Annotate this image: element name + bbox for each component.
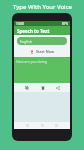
staticText: English	[20, 39, 32, 44]
button[interactable]: Share	[54, 84, 61, 91]
button[interactable]: English	[17, 37, 67, 45]
button[interactable]: How are you doing	[14, 57, 70, 83]
staticText: Type With Your Voice	[13, 3, 72, 11]
staticText: How are you doing	[16, 59, 47, 64]
staticText: 87%	[62, 22, 68, 26]
staticText: Speech to Text	[17, 28, 50, 34]
staticText: Start Now	[36, 49, 55, 54]
button[interactable]: Copy	[23, 84, 30, 91]
button[interactable]: Delete	[39, 84, 46, 91]
staticText: 10:08	[16, 22, 24, 26]
button[interactable]: Start Now	[26, 48, 59, 55]
